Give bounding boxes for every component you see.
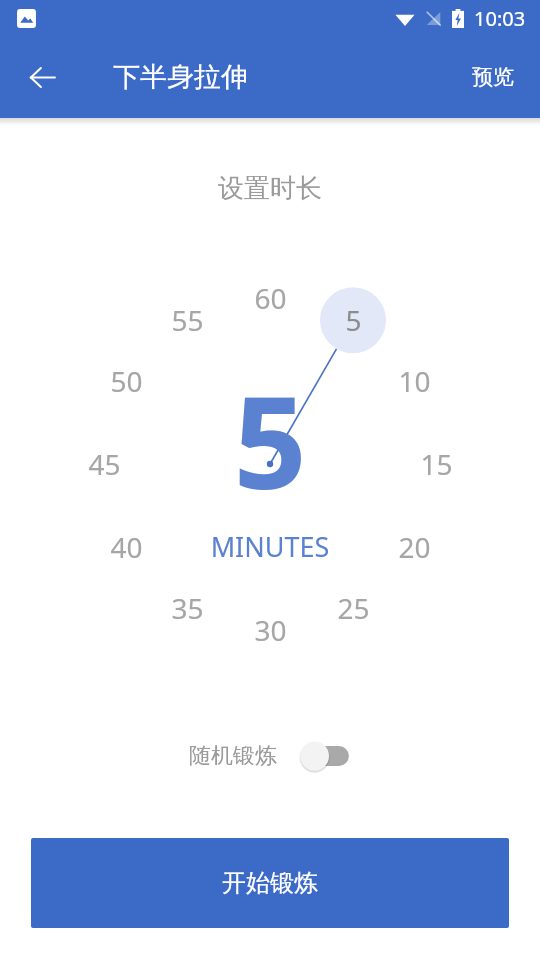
staticText: 20 (398, 528, 431, 566)
staticText: 15 (420, 445, 453, 483)
staticText: 45 (88, 445, 121, 483)
staticText: 50 (110, 362, 143, 400)
staticText: 设置时长 (0, 172, 540, 205)
staticText: 30 (254, 611, 287, 649)
staticText: 35 (171, 589, 204, 627)
staticText: 随机锻炼 (189, 742, 277, 770)
button[interactable]: 随机锻炼 (183, 732, 357, 780)
button[interactable]: Random workout (299, 740, 351, 772)
staticText: 预览 (472, 64, 514, 90)
staticText: 10:03 (474, 5, 526, 32)
staticText: 下半身拉伸 (113, 60, 248, 94)
staticText: 55 (171, 301, 204, 339)
button[interactable]: Back (18, 53, 66, 101)
button[interactable]: 开始锻炼 (31, 838, 509, 928)
staticText: 25 (337, 589, 370, 627)
button[interactable]: 预览 (458, 52, 528, 102)
staticText: 5 (345, 301, 362, 339)
staticText: 10 (398, 362, 431, 400)
staticText: 开始锻炼 (222, 868, 318, 898)
staticText: MINUTES (0, 528, 540, 565)
staticText: 60 (254, 279, 287, 317)
staticText: 5 (233, 352, 307, 526)
staticText: 40 (110, 528, 143, 566)
